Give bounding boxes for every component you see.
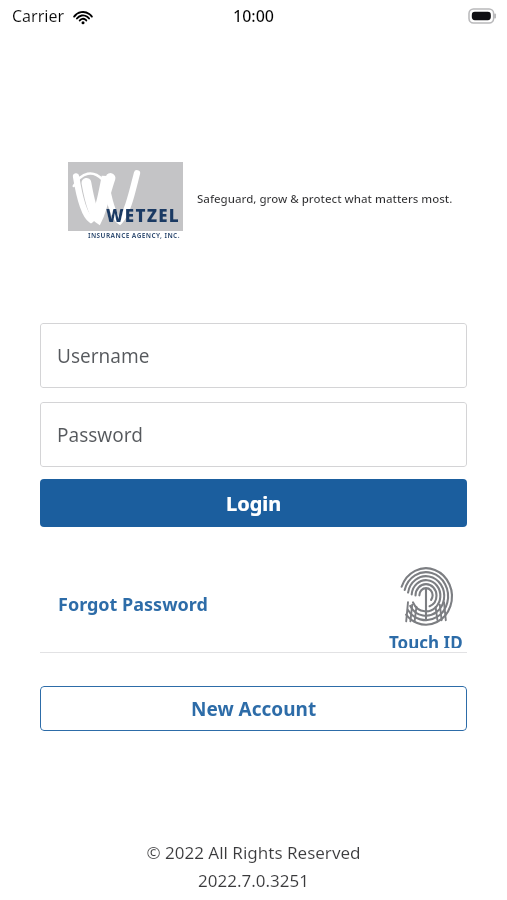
staticText: Carrier (12, 5, 65, 27)
staticText: Touch ID (389, 631, 463, 648)
button[interactable]: Touch ID (381, 561, 471, 652)
button[interactable]: Password (40, 402, 467, 467)
staticText: INSURANCE AGENCY, INC. (88, 231, 180, 240)
staticText: WETZEL (106, 204, 180, 227)
staticText: Login (226, 490, 282, 517)
button[interactable]: Login (40, 479, 467, 527)
staticText: Safeguard, grow & protect what matters m… (197, 191, 453, 207)
staticText: New Account (191, 696, 317, 722)
staticText: 10:00 (233, 5, 274, 27)
staticText: 2022.7.0.3251 (198, 869, 309, 892)
staticText: Forgot Password (58, 592, 208, 617)
staticText: Username (57, 343, 150, 369)
staticText: Password (57, 422, 143, 448)
staticText: © 2022 All Rights Reserved (146, 841, 361, 864)
button[interactable]: Forgot Password (52, 586, 214, 623)
button[interactable]: Username (40, 323, 467, 388)
button[interactable]: New Account (40, 686, 467, 731)
